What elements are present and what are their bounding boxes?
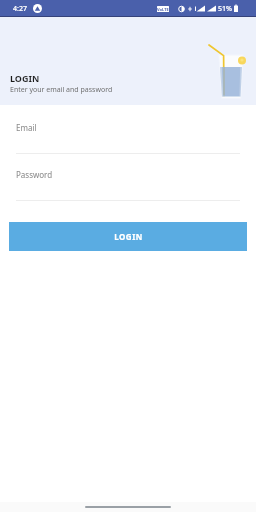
staticText: 4:27 [13,4,27,14]
staticText: Enter your email and password [10,85,113,95]
button[interactable]: Email [0,120,256,154]
button[interactable]: Home gesture bar [85,506,171,508]
staticText: Email [16,122,37,133]
staticText: Password [16,169,53,180]
button[interactable]: Password [0,167,256,201]
staticText: 51% [218,4,232,14]
staticText: LOGIN [10,72,40,84]
button[interactable]: LOGIN [9,222,247,251]
staticText: VoLTE [157,7,169,12]
staticText: LOGIN [114,231,143,242]
